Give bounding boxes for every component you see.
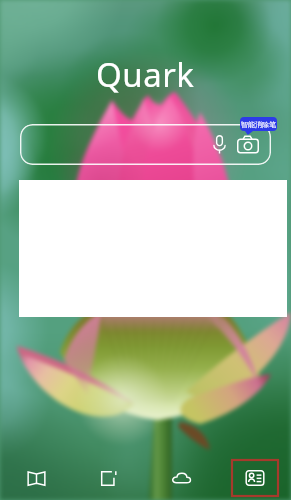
staticText: Quark	[96, 52, 195, 97]
button[interactable]: Voice search	[20, 124, 271, 165]
button[interactable]: Camera search	[233, 130, 262, 159]
button[interactable]: Cloud	[145, 456, 218, 500]
staticText: 智能消除笔	[241, 120, 276, 129]
button[interactable]: Tabs	[72, 456, 145, 500]
button[interactable]: Voice search	[206, 131, 233, 158]
button[interactable]: Bookmarks	[0, 456, 72, 500]
button[interactable]: Profile	[232, 460, 278, 496]
